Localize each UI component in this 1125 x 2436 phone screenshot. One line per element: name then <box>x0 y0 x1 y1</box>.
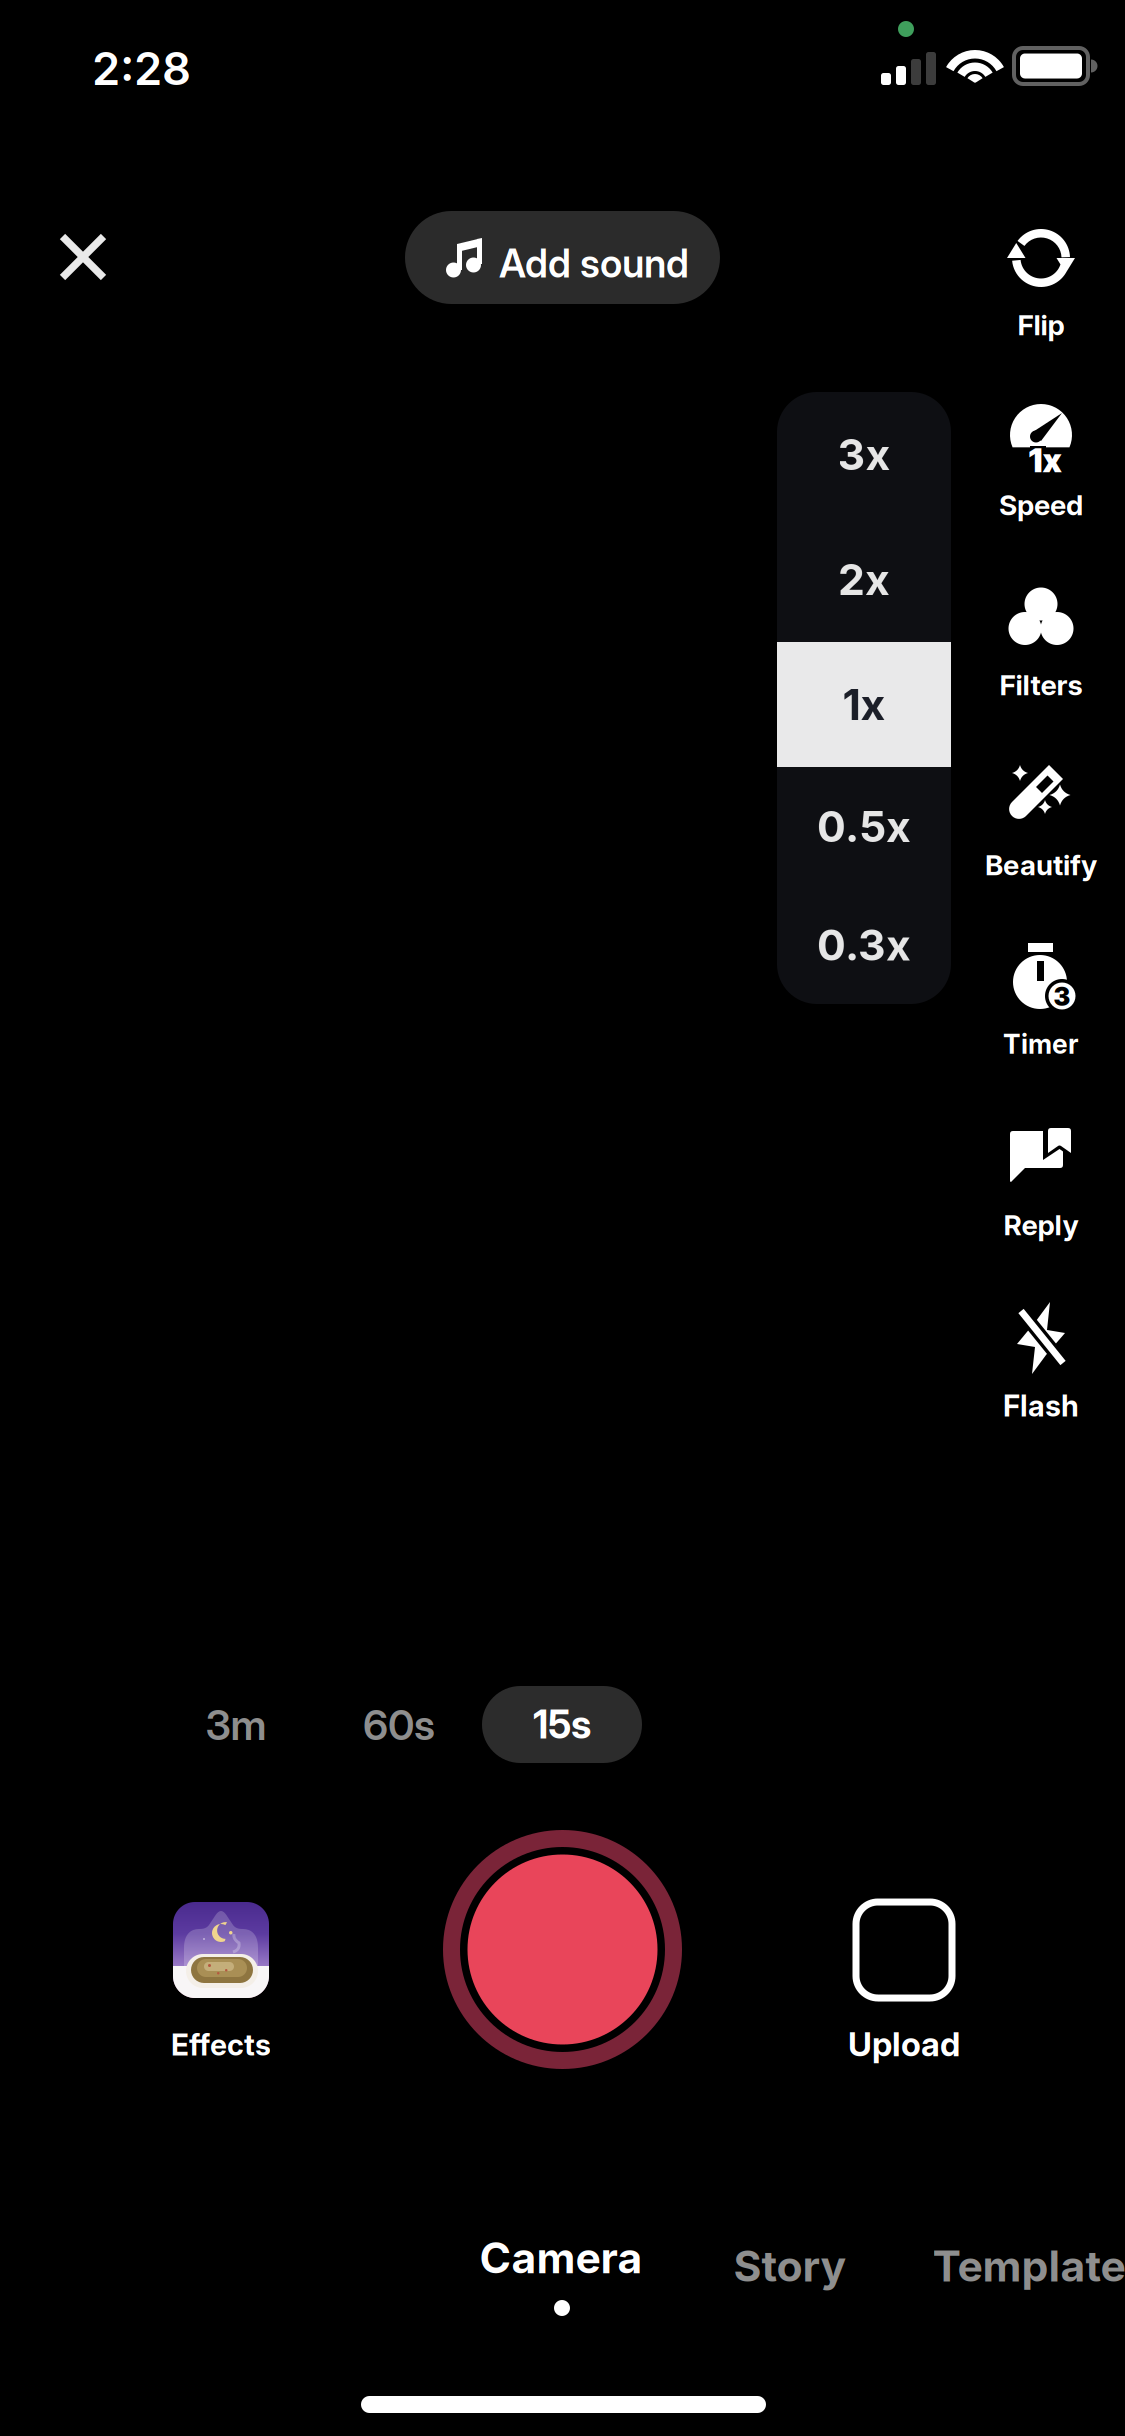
button[interactable]: Templates <box>901 2232 1125 2300</box>
button[interactable]: 1x <box>777 642 951 767</box>
button[interactable]: 0.5x <box>777 767 951 886</box>
button[interactable]: Reply <box>926 1122 1125 1302</box>
staticText: Speed <box>999 488 1083 522</box>
button[interactable]: Close <box>23 197 143 317</box>
staticText: Add sound <box>499 240 689 287</box>
staticText: Story <box>733 2240 846 2292</box>
staticText: 1x <box>842 679 885 730</box>
staticText: 1x <box>1028 440 1061 480</box>
button[interactable]: Story <box>700 2232 880 2300</box>
staticText: 2x <box>838 554 890 605</box>
staticText: 60s <box>363 1700 435 1750</box>
button[interactable]: 3m <box>181 1685 291 1765</box>
staticText: Beautify <box>985 848 1097 882</box>
staticText: Upload <box>848 2024 960 2064</box>
staticText: 3 <box>1053 981 1070 1012</box>
button[interactable]: Upload <box>789 1902 1019 2072</box>
button[interactable]: Flash <box>926 1302 1125 1482</box>
button[interactable]: Record <box>443 1830 682 2069</box>
staticText: Reply <box>1003 1208 1078 1242</box>
staticText: Timer <box>1003 1028 1079 1060</box>
button[interactable]: 0.3x <box>777 886 951 1004</box>
staticText: Flip <box>1017 308 1064 342</box>
button[interactable]: Filters <box>926 582 1125 762</box>
staticText: 3x <box>837 429 890 480</box>
button[interactable]: 60s <box>344 1685 454 1765</box>
button[interactable]: Add sound <box>405 211 720 304</box>
button[interactable]: 3 <box>926 942 1125 1122</box>
staticText: 3m <box>205 1700 266 1750</box>
button[interactable]: 1x <box>926 402 1125 582</box>
staticText: Templates <box>932 2240 1125 2292</box>
staticText: 2:28 <box>92 41 191 96</box>
button[interactable]: 3x <box>777 392 951 517</box>
staticText: Flash <box>1003 1388 1079 1423</box>
button[interactable]: 2x <box>777 517 951 642</box>
staticText: Filters <box>999 668 1082 702</box>
staticText: 15s <box>533 1701 591 1748</box>
staticText: Camera <box>479 2232 642 2284</box>
button[interactable]: Flip <box>926 222 1125 402</box>
staticText: 0.3x <box>817 919 911 971</box>
staticText: Effects <box>171 2027 271 2062</box>
button[interactable]: 15s <box>482 1686 642 1763</box>
button[interactable]: Effects <box>106 1902 336 2072</box>
button[interactable]: Camera <box>451 2232 671 2342</box>
staticText: 0.5x <box>817 801 911 852</box>
button[interactable]: Beautify <box>926 762 1125 942</box>
